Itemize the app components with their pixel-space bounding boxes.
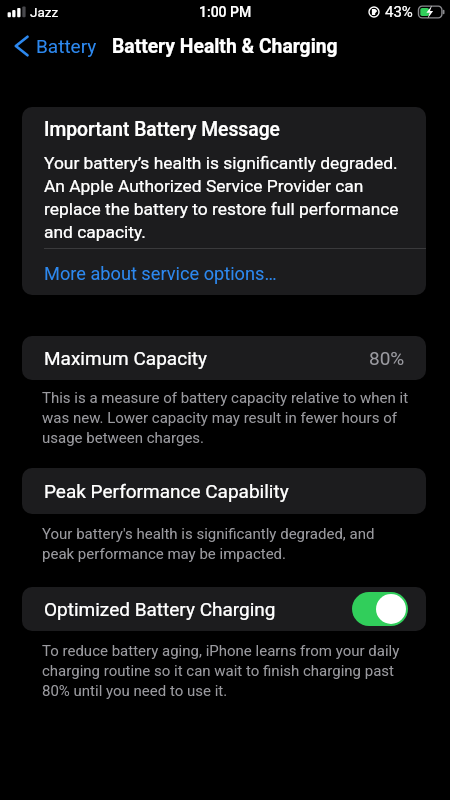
button[interactable]: Maximum Capacity: [22, 336, 426, 380]
staticText: Important Battery Message: [44, 118, 280, 141]
staticText: Jazz: [30, 4, 59, 20]
other: Location Services: [368, 6, 380, 18]
staticText: Maximum Capacity: [44, 347, 207, 369]
other: Battery charging, 43 percent: [418, 4, 444, 20]
staticText: Your battery's health is significantly d…: [42, 523, 409, 563]
button[interactable]: Optimized Battery Charging, on: [352, 592, 408, 626]
button[interactable]: Battery: [0, 30, 107, 62]
staticText: 1:00 PM: [199, 4, 252, 20]
staticText: Battery Health & Charging: [112, 35, 338, 58]
staticText: More about service options…: [44, 263, 277, 284]
staticText: Peak Performance Capability: [44, 480, 289, 502]
staticText: Your battery’s health is significantly d…: [44, 151, 410, 243]
staticText: Battery: [36, 35, 97, 57]
button[interactable]: More about service options…: [22, 249, 426, 295]
staticText: This is a measure of battery capacity re…: [42, 387, 409, 447]
staticText: To reduce battery aging, iPhone learns f…: [42, 640, 409, 700]
button[interactable]: Optimized Battery Charging: [22, 587, 426, 631]
staticText: Optimized Battery Charging: [44, 598, 276, 620]
staticText: 80%: [369, 347, 405, 369]
button[interactable]: Peak Performance Capability: [22, 468, 426, 514]
staticText: 43%: [385, 3, 413, 21]
